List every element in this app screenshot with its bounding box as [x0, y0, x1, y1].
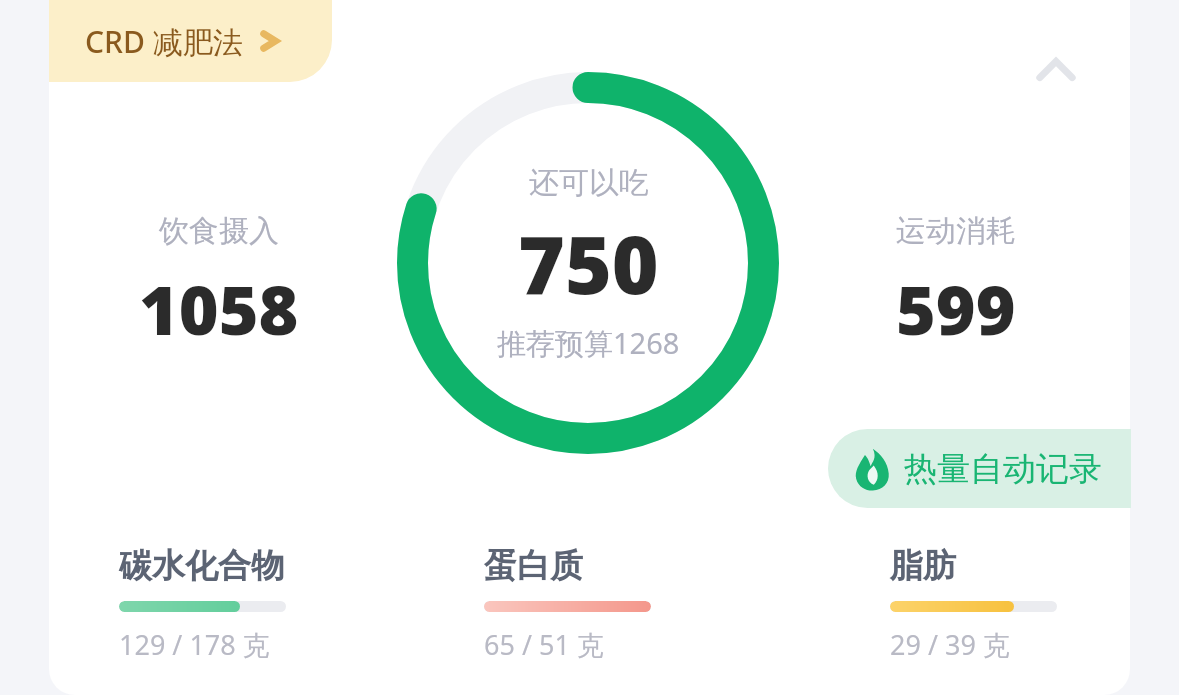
staticText: 65 / 51 克: [484, 626, 604, 663]
button[interactable]: 还可以吃: [388, 63, 788, 463]
staticText: 1058: [139, 262, 299, 352]
button[interactable]: 热量自动记录: [828, 429, 1131, 508]
staticText: 热量自动记录: [904, 448, 1102, 490]
staticText: 还可以吃: [529, 164, 649, 202]
staticText: 饮食摄入: [159, 212, 279, 250]
staticText: 碳水化合物: [119, 545, 284, 587]
button[interactable]: 运动消耗: [826, 212, 1086, 352]
staticText: 蛋白质: [484, 545, 583, 587]
staticText: 推荐预算1268: [497, 323, 680, 363]
button[interactable]: 收起: [1026, 38, 1086, 98]
button[interactable]: 脂肪: [890, 545, 1070, 663]
staticText: 29 / 39 克: [890, 626, 1010, 663]
staticText: 750: [518, 208, 659, 317]
staticText: CRD 减肥法: [85, 21, 243, 62]
staticText: 599: [896, 262, 1016, 352]
button[interactable]: 饮食摄入: [89, 212, 349, 352]
staticText: 运动消耗: [896, 212, 1016, 250]
button[interactable]: CRD 减肥法: [49, 0, 332, 82]
staticText: 脂肪: [890, 545, 956, 587]
staticText: 129 / 178 克: [119, 626, 270, 663]
button[interactable]: 碳水化合物: [119, 545, 299, 663]
button[interactable]: 蛋白质: [484, 545, 664, 663]
